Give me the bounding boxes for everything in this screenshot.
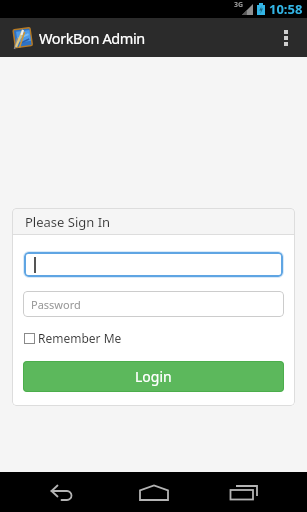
staticText: Password bbox=[31, 297, 81, 312]
staticText: Remember Me bbox=[38, 330, 122, 346]
staticText: WorkBon Admin bbox=[39, 28, 145, 48]
button[interactable] bbox=[103, 472, 205, 512]
staticText: 10:58 bbox=[269, 0, 303, 18]
button[interactable] bbox=[24, 252, 283, 277]
button[interactable]: Remember Me bbox=[23, 330, 122, 346]
staticText: 3G bbox=[234, 0, 244, 10]
button[interactable]: Password bbox=[23, 291, 284, 317]
button[interactable] bbox=[0, 472, 103, 512]
button[interactable] bbox=[205, 472, 307, 512]
staticText: Login bbox=[135, 367, 172, 386]
button[interactable] bbox=[271, 18, 301, 57]
button[interactable]: Login bbox=[23, 361, 284, 392]
staticText: Please Sign In bbox=[25, 213, 111, 231]
